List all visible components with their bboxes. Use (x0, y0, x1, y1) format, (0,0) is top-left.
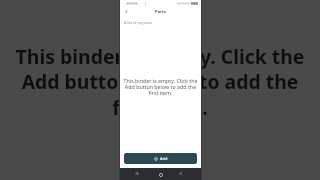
staticText: Parts (155, 9, 166, 15)
button[interactable]: Add (124, 153, 197, 164)
staticText: A list of my parts (124, 20, 153, 25)
staticText: Add (160, 156, 168, 161)
button[interactable]: Back (176, 169, 185, 178)
staticText: This binder is empty. Click the Add butt… (0, 43, 320, 121)
button[interactable]: Home (156, 170, 165, 179)
button[interactable]: Recent apps (132, 169, 141, 178)
staticText: This binder is empty. Click the Add butt… (120, 77, 201, 96)
button[interactable]: Back (123, 8, 130, 15)
